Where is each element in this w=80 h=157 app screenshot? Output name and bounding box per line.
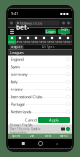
staticText: Apply [49, 117, 59, 123]
button[interactable]: Menu [56, 133, 72, 138]
staticText: Soccer [64, 40, 72, 43]
staticText: England [10, 57, 23, 62]
staticText: Leagues [11, 45, 22, 49]
staticText: International Clubs [10, 94, 42, 99]
staticText: All Types [42, 45, 54, 49]
button[interactable]: Live [24, 133, 40, 138]
staticText: betway [16, 23, 30, 40]
button[interactable]: Sign Up [58, 29, 70, 34]
staticText: betway.co.za [20, 20, 42, 26]
staticText: Bets [45, 134, 51, 138]
staticText: Italy [10, 79, 17, 84]
staticText: Login [46, 29, 55, 34]
staticText: Portugal [10, 102, 24, 107]
staticText: Soccer [48, 40, 56, 43]
staticText: ▪▪▪ [60, 11, 69, 16]
staticText: Sports [12, 134, 20, 138]
staticText: ‹ [56, 140, 58, 147]
staticText: Over 18s only. Gamble responsibly. [10, 127, 41, 135]
staticText: Soccer [56, 40, 64, 43]
staticText: Betway | Play Safe [10, 123, 33, 127]
staticText: Cancel [25, 117, 37, 123]
staticText: Sign Up [60, 26, 67, 37]
staticText: Soccer [16, 40, 24, 43]
staticText: Live [29, 134, 34, 138]
staticText: France [10, 87, 22, 92]
staticText: Soccer [40, 40, 48, 43]
staticText: 9:41 [11, 11, 18, 16]
staticText: Leagues [10, 50, 24, 55]
staticText: Netherlands [10, 109, 31, 114]
staticText: Soccer [24, 40, 32, 43]
staticText: Germany [10, 72, 27, 77]
staticText: Spain [10, 64, 19, 69]
staticText: Menu [60, 134, 68, 138]
staticText: Soccer [32, 40, 40, 43]
button[interactable]: Cancel [24, 117, 38, 122]
staticText: Soccer [8, 40, 16, 43]
button[interactable]: Sports [8, 133, 24, 138]
button[interactable]: Bets [40, 133, 56, 138]
button[interactable]: Apply [38, 117, 70, 123]
button[interactable]: Login [45, 29, 56, 34]
